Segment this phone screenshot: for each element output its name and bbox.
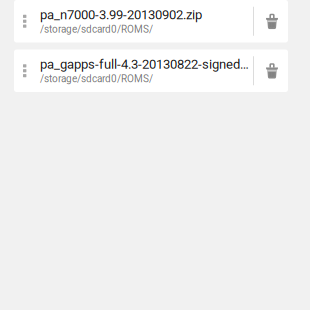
button[interactable]: Delete pa_gapps-full-4.3-20130822-signed… xyxy=(254,49,288,92)
staticText: /storage/sdcard0/ROMS/ xyxy=(40,73,153,85)
staticText: pa_gapps-full-4.3-20130822-signed.zip xyxy=(40,57,249,72)
staticText: /storage/sdcard0/ROMS/ xyxy=(40,23,153,35)
staticText: pa_n7000-3.99-20130902.zip xyxy=(40,7,202,22)
button[interactable]: Reorder pa_gapps-full-4.3-20130822-signe… xyxy=(14,49,40,92)
button[interactable]: Reorder pa_n7000-3.99-20130902.zip xyxy=(14,0,40,42)
button[interactable]: Delete pa_n7000-3.99-20130902.zip xyxy=(254,0,288,42)
button[interactable]: pa_n7000-3.99-20130902.zip xyxy=(14,0,288,42)
button[interactable]: pa_gapps-full-4.3-20130822-signed.zip xyxy=(14,49,288,92)
